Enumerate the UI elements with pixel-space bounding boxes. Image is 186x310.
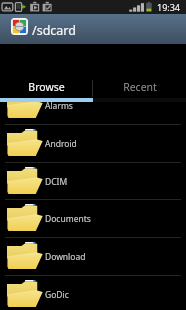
staticText: /sdcard	[32, 22, 76, 39]
button[interactable]: App icon	[0, 14, 186, 44]
button[interactable]: DCIM	[0, 163, 186, 200]
staticText: Recent	[123, 80, 157, 94]
staticText: Android	[45, 138, 77, 150]
button[interactable]: GoDic	[0, 276, 186, 310]
other: App icon	[11, 18, 28, 35]
button[interactable]: Browse	[0, 44, 92, 98]
staticText: Browse	[28, 80, 65, 94]
staticText: Download	[45, 251, 86, 263]
button[interactable]: Download	[0, 238, 186, 275]
button[interactable]: Recent	[93, 44, 186, 98]
staticText: 19:34	[157, 1, 181, 13]
button[interactable]: Documents	[0, 200, 186, 237]
button[interactable]: Android	[0, 125, 186, 162]
staticText: Alarms	[45, 102, 73, 112]
button[interactable]: Alarms	[0, 102, 186, 124]
staticText: Documents	[45, 213, 91, 225]
staticText: DCIM	[45, 176, 68, 188]
staticText: GoDic	[45, 289, 69, 301]
